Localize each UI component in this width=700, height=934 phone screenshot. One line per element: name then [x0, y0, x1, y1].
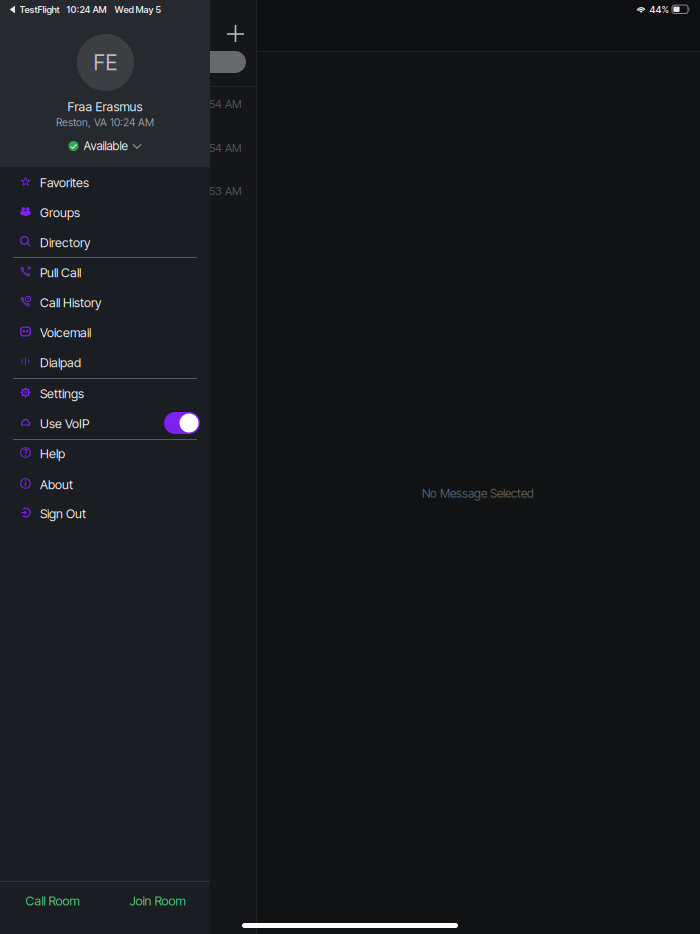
staticText: TestFlight	[19, 4, 59, 15]
button[interactable]: Use VoIP	[0, 408, 210, 438]
button[interactable]: Directory	[0, 227, 210, 257]
button[interactable]: Available	[0, 136, 210, 156]
staticText: Dialpad	[40, 355, 81, 370]
staticText: FE	[93, 50, 117, 75]
button[interactable]: Sign Out	[0, 498, 210, 528]
staticText: Wed May 5	[114, 4, 161, 15]
staticText: 44%	[649, 4, 669, 15]
staticText: Voicemail	[40, 325, 91, 340]
button[interactable]: i	[0, 469, 210, 499]
staticText: Directory	[40, 235, 90, 250]
staticText: Groups	[40, 205, 80, 220]
staticText: ?	[23, 447, 27, 458]
staticText: Help	[40, 446, 65, 461]
button[interactable]: Call Room	[0, 882, 105, 920]
staticText: Join Room	[129, 893, 185, 909]
staticText: Available	[83, 139, 127, 153]
staticText: Use VoIP	[40, 416, 89, 431]
button[interactable]: Pull Call	[0, 257, 210, 287]
staticText: 54 AM	[209, 97, 242, 111]
button[interactable]: Settings	[0, 378, 210, 408]
button[interactable]: Favorites	[0, 167, 210, 197]
staticText: Favorites	[40, 175, 89, 190]
staticText: Reston, VA 10:24 AM	[56, 116, 154, 129]
staticText: Fraa Erasmus	[67, 99, 142, 114]
staticText: 10:24 AM	[66, 4, 106, 15]
staticText: Call History	[40, 295, 101, 310]
staticText: Settings	[40, 386, 84, 401]
staticText: i	[24, 478, 26, 489]
button[interactable]: ?	[0, 438, 210, 468]
staticText: 53 AM	[209, 184, 242, 198]
button[interactable]: New message	[227, 25, 247, 45]
button[interactable]: Call History	[0, 287, 210, 317]
button[interactable]: Voicemail	[0, 317, 210, 347]
button[interactable]: Join Room	[105, 882, 210, 920]
staticText: About	[40, 477, 73, 492]
staticText: No Message Selected	[422, 486, 534, 500]
button[interactable]: Dialpad	[0, 347, 210, 377]
staticText: Sign Out	[40, 506, 86, 521]
staticText: Call Room	[25, 893, 79, 909]
button[interactable]: Groups	[0, 197, 210, 227]
staticText: Pull Call	[40, 265, 81, 280]
staticText: 54 AM	[209, 141, 242, 155]
